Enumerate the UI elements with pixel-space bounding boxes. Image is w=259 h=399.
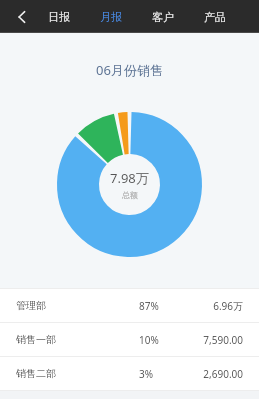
- staticText: 2,690.00: [181, 367, 243, 381]
- staticText: 10%: [139, 333, 181, 347]
- button[interactable]: 日报: [44, 6, 74, 28]
- button[interactable]: 管理部: [0, 289, 259, 322]
- staticText: 销售一部: [16, 333, 139, 346]
- button[interactable]: 产品: [200, 6, 230, 28]
- button[interactable]: 销售一部: [0, 323, 259, 356]
- staticText: 3%: [139, 367, 181, 381]
- staticText: 日报: [48, 10, 70, 24]
- staticText: 销售二部: [16, 367, 139, 380]
- staticText: 6.96万: [181, 299, 243, 313]
- staticText: 产品: [204, 10, 226, 24]
- button[interactable]: 月报: [96, 6, 126, 28]
- staticText: 总额: [122, 190, 138, 200]
- staticText: 管理部: [16, 299, 139, 312]
- staticText: 06月份销售: [96, 61, 163, 79]
- button[interactable]: Back: [8, 2, 38, 32]
- button[interactable]: 销售二部: [0, 357, 259, 390]
- staticText: 客户: [152, 10, 174, 24]
- button[interactable]: 客户: [148, 6, 178, 28]
- staticText: 87%: [139, 299, 181, 313]
- staticText: 7,590.00: [181, 333, 243, 347]
- staticText: 月报: [100, 10, 122, 24]
- staticText: 7.98万: [110, 169, 149, 187]
